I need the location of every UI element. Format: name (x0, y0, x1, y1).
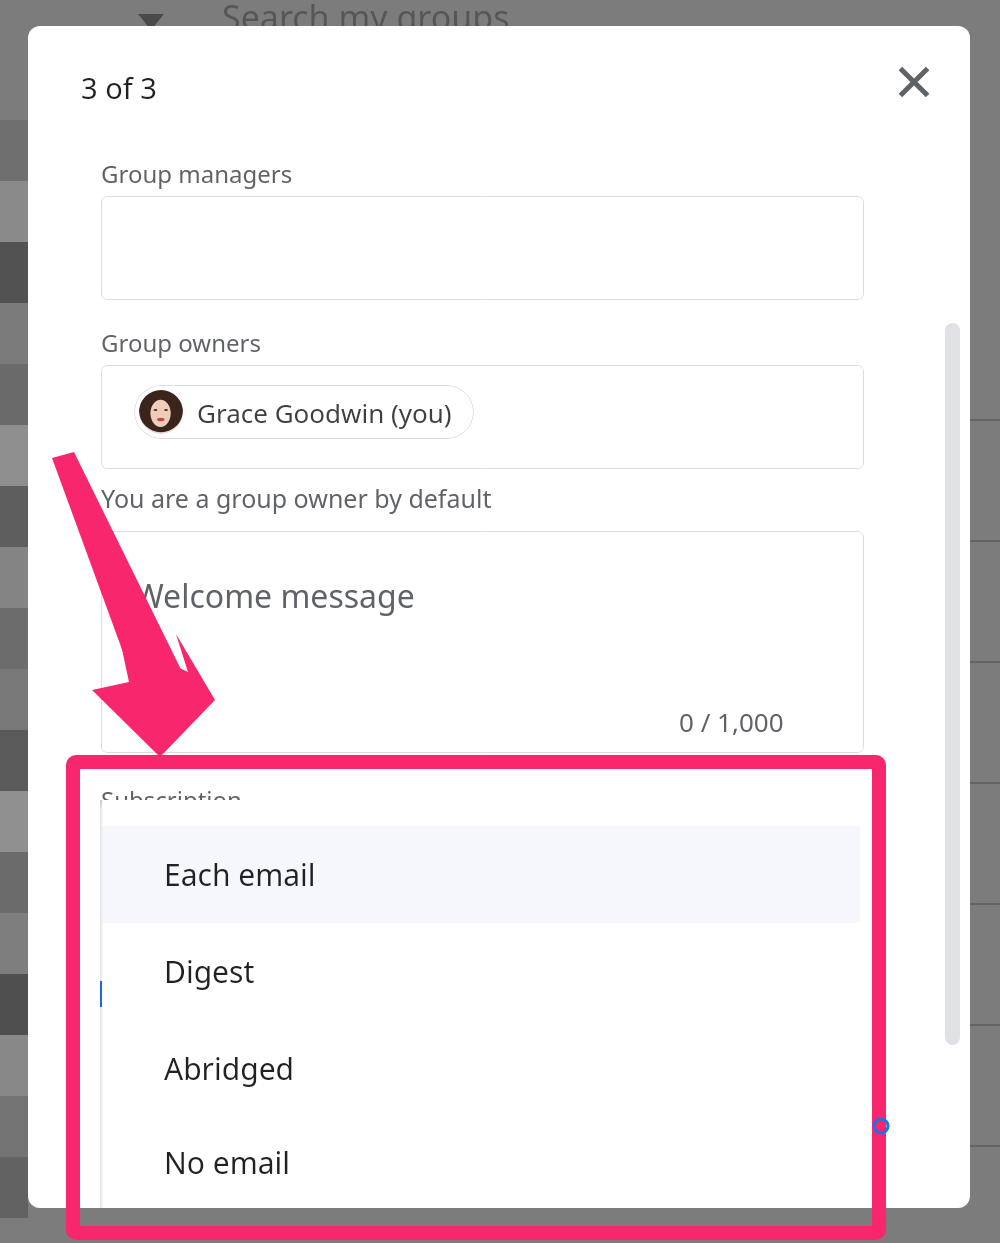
button[interactable] (101, 196, 864, 300)
button[interactable]: Digest (102, 923, 860, 1020)
staticText: Welcome message (134, 574, 415, 618)
button[interactable]: Grace Goodwin (you) (134, 385, 474, 439)
staticText: Grace Goodwin (you) (197, 395, 452, 430)
button[interactable]: Welcome message (101, 531, 864, 753)
staticText: Digest (164, 951, 255, 992)
staticText: Subscription (101, 783, 242, 816)
button[interactable]: Each email (102, 826, 860, 923)
staticText: Group owners (101, 326, 261, 359)
staticText: 3 of 3 (81, 68, 157, 107)
staticText: You are a group owner by default (101, 481, 492, 515)
staticText: 0 / 1,000 (679, 704, 784, 739)
button[interactable]: Close (886, 54, 942, 110)
staticText: No email (164, 1142, 291, 1183)
button[interactable]: No email (102, 1117, 860, 1208)
staticText: Abridged (164, 1048, 295, 1089)
button[interactable]: Abridged (102, 1020, 860, 1117)
staticText: Group managers (101, 157, 293, 190)
staticText: Search my groups (222, 0, 510, 40)
staticText: Each email (164, 854, 316, 895)
